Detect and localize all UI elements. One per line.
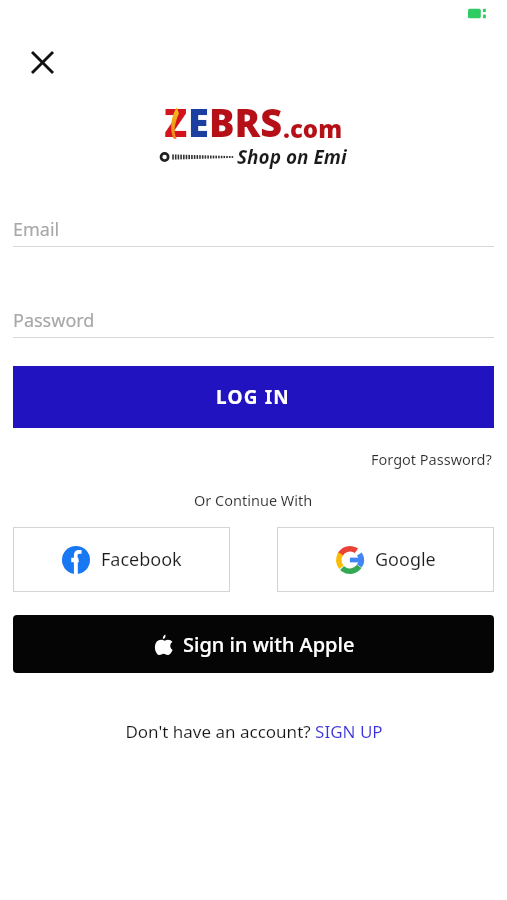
staticText: .com: [283, 112, 343, 145]
button[interactable]: Password: [13, 303, 494, 338]
staticText: Forgot Password?: [371, 449, 492, 469]
staticText: Or Continue With: [194, 490, 313, 510]
staticText: Z: [164, 96, 188, 148]
staticText: Password: [13, 308, 95, 333]
staticText: E: [188, 96, 209, 148]
button[interactable]: LOG IN: [13, 366, 494, 428]
button[interactable]: Don't have an account? SIGN UP: [121, 716, 387, 747]
button[interactable]: Forgot Password?: [369, 446, 494, 472]
staticText: Sign in with Apple: [183, 631, 355, 658]
button[interactable]: Google: [277, 527, 494, 592]
staticText: BRS: [209, 96, 283, 148]
button[interactable]: Sign in with Apple: [13, 615, 494, 673]
staticText: LOG IN: [216, 384, 291, 410]
staticText: Don't have an account? SIGN UP: [125, 720, 383, 743]
staticText: Facebook: [101, 547, 182, 572]
staticText: Shop on Emi: [237, 144, 347, 170]
staticText: Email: [13, 217, 60, 242]
button[interactable]: Close: [20, 40, 64, 84]
button[interactable]: Email: [13, 212, 494, 247]
button[interactable]: Facebook: [13, 527, 230, 592]
staticText: Google: [375, 547, 436, 572]
